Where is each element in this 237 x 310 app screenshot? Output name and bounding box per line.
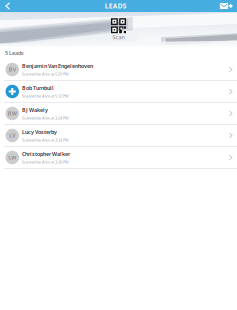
staticText: BW bbox=[8, 110, 17, 117]
button[interactable]: Bob Turnbull bbox=[0, 81, 237, 103]
button[interactable]: Scan bbox=[97, 14, 139, 44]
staticText: BV bbox=[9, 66, 16, 73]
staticText: Scan bbox=[112, 34, 124, 41]
staticText: Scanned by Alex at 3:24 PM bbox=[22, 115, 69, 120]
button[interactable]: BV bbox=[0, 59, 237, 81]
staticText: Lucy Vosterby bbox=[22, 128, 57, 136]
staticText: Scanned by Alex at 3:20 PM bbox=[22, 159, 69, 164]
button[interactable]: Messages bbox=[216, 0, 237, 12]
button[interactable]: LV bbox=[0, 125, 237, 147]
button[interactable]: BW bbox=[0, 103, 237, 125]
staticText: 5 Leads bbox=[5, 49, 24, 57]
staticText: Benjamin Van Engelenhoven bbox=[22, 62, 93, 70]
staticText: BJ Wakely bbox=[22, 106, 48, 114]
staticText: Scanned by Alex at 5:12 PM bbox=[22, 93, 69, 98]
button[interactable]: Back bbox=[0, 0, 16, 12]
staticText: LEADS bbox=[105, 2, 127, 10]
staticText: Scanned by Alex at 5:29 PM bbox=[22, 71, 69, 76]
staticText: Christopher Walker bbox=[22, 150, 70, 158]
button[interactable]: CW bbox=[0, 147, 237, 169]
staticText: LV bbox=[9, 132, 15, 139]
staticText: CW bbox=[8, 154, 16, 161]
staticText: Scanned by Alex at 3:24 PM bbox=[22, 137, 69, 142]
staticText: Bob Turnbull bbox=[22, 84, 54, 92]
